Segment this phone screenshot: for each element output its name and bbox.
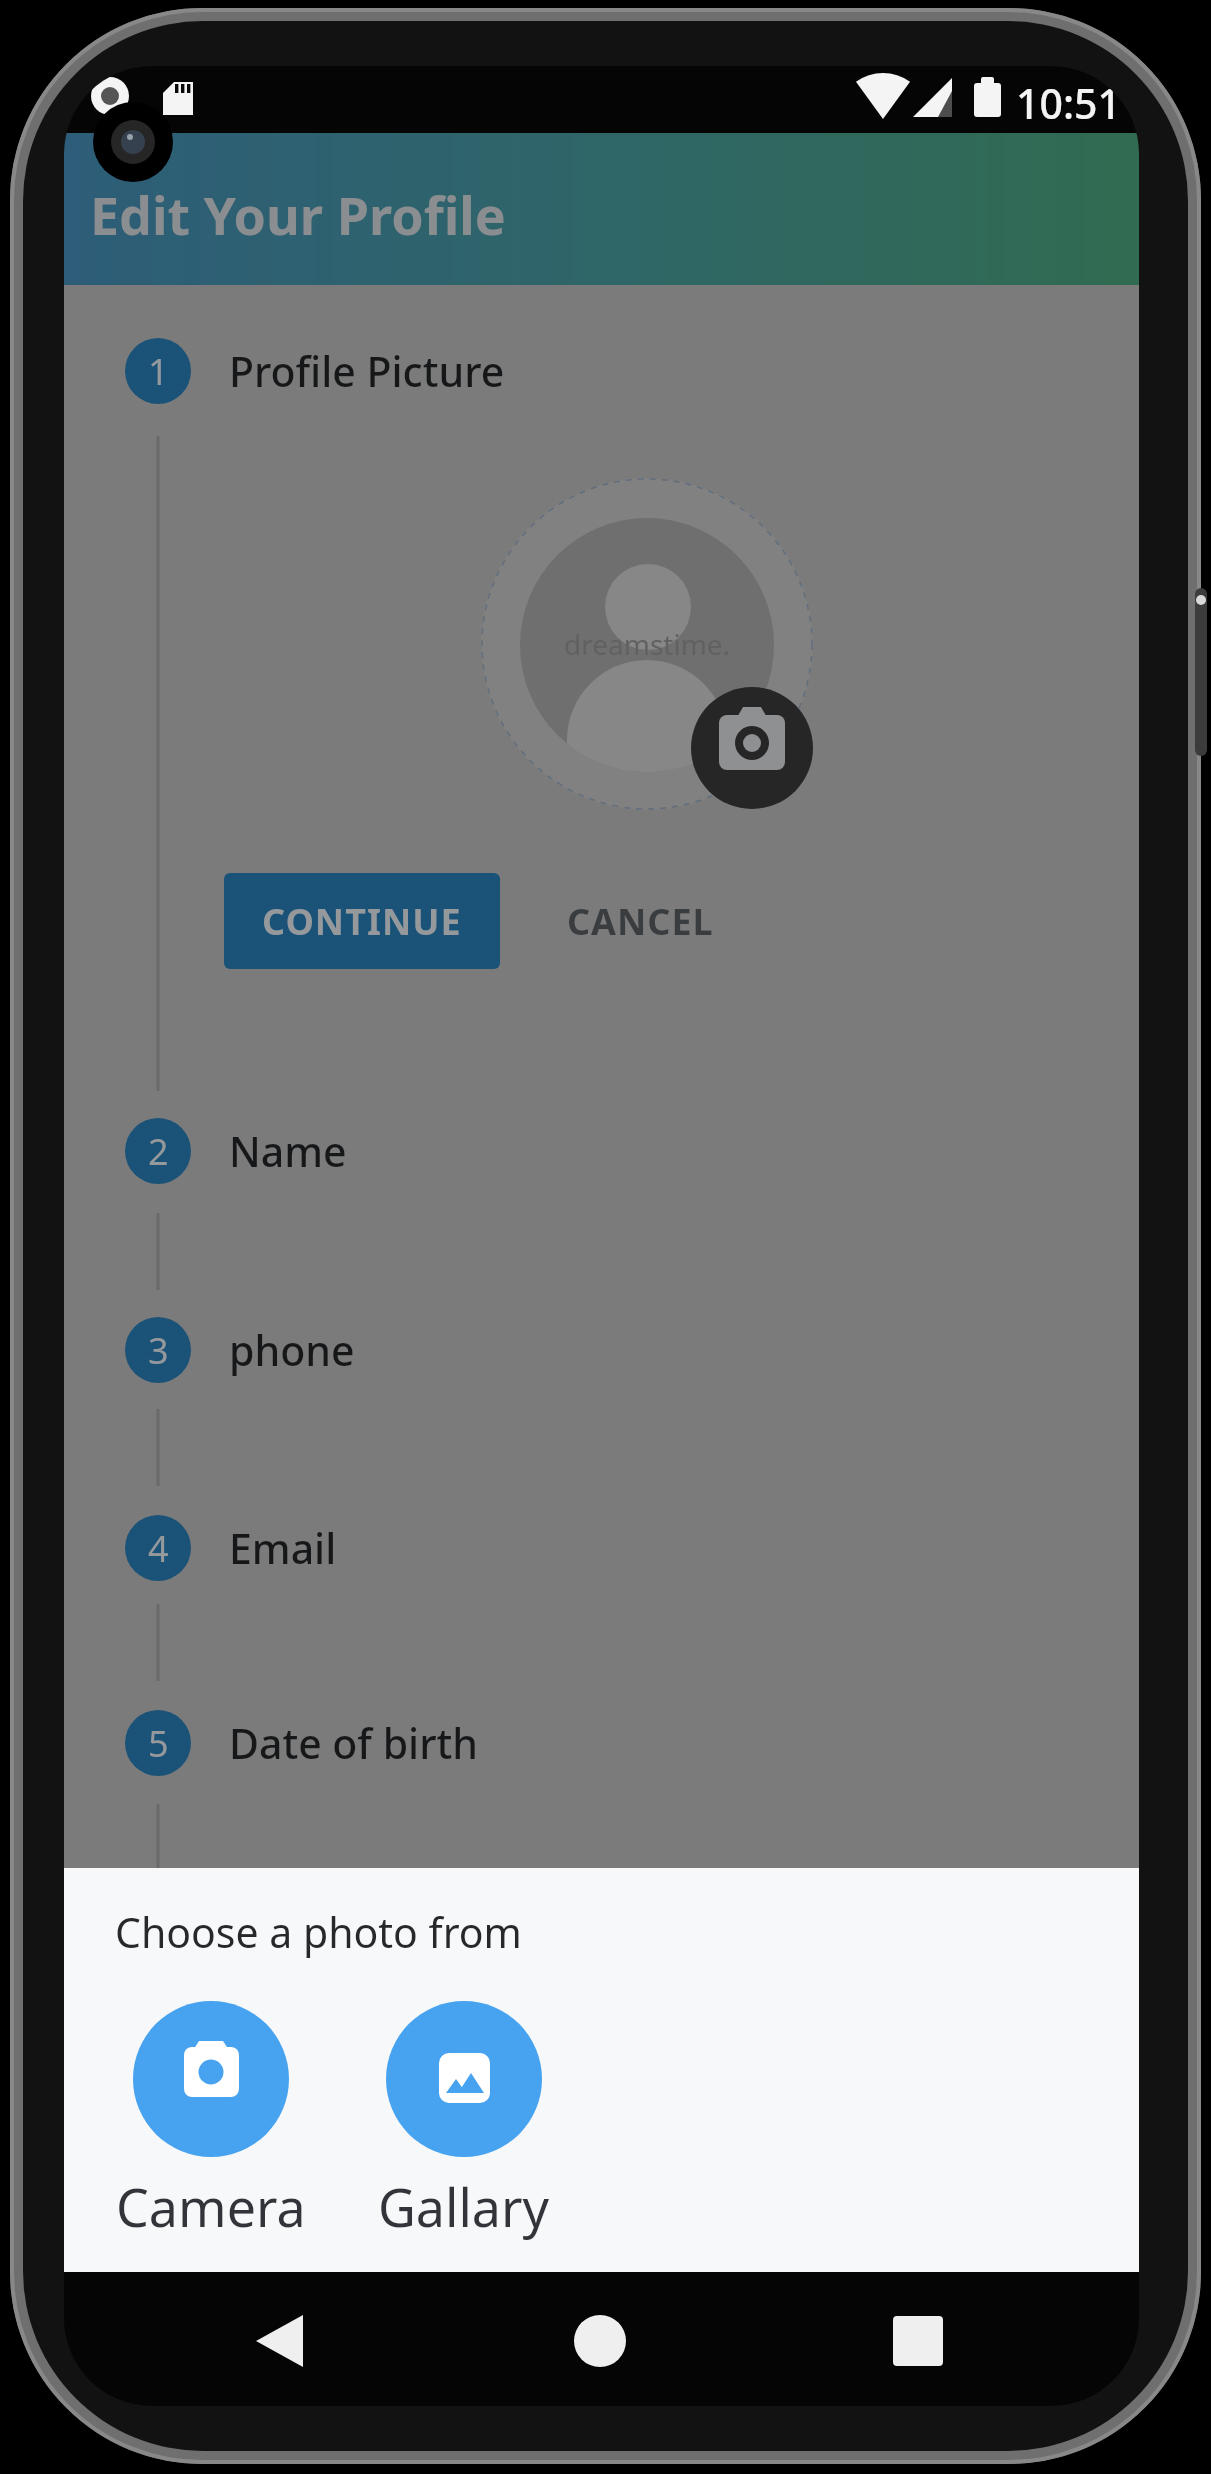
staticText: CANCEL (567, 897, 714, 946)
staticText: phone (229, 1322, 355, 1378)
button[interactable]: CONTINUE (224, 873, 500, 969)
staticText: 4 (148, 1524, 169, 1573)
button[interactable]: 3 (125, 1317, 355, 1383)
button[interactable] (691, 687, 813, 809)
button[interactable]: Gallary (366, 2001, 562, 2242)
staticText: Name (229, 1123, 347, 1179)
staticText: 10:51 (1016, 75, 1121, 131)
staticText: Email (229, 1520, 337, 1576)
button[interactable]: dreamstime. (481, 478, 813, 810)
staticText: 3 (148, 1326, 169, 1375)
staticText: dreamstime. (564, 625, 731, 663)
staticText: 5 (148, 1719, 169, 1768)
button[interactable] (224, 2296, 314, 2386)
button[interactable]: 2 (125, 1118, 347, 1184)
button[interactable]: 4 (125, 1515, 337, 1581)
staticText: Gallary (378, 2171, 550, 2242)
button[interactable]: CANCEL (540, 873, 740, 969)
staticText: CONTINUE (262, 897, 462, 946)
staticText: 1 (148, 347, 169, 396)
staticText: Date of birth (229, 1715, 478, 1771)
button[interactable] (555, 2296, 645, 2386)
staticText: Choose a photo from (115, 1904, 522, 1960)
staticText: Profile Picture (229, 343, 505, 399)
button[interactable] (873, 2296, 963, 2386)
staticText: Camera (116, 2171, 306, 2242)
button[interactable]: Camera (115, 2001, 307, 2242)
button[interactable]: 5 (125, 1710, 478, 1776)
button[interactable]: 1 (125, 338, 505, 404)
staticText: Edit Your Profile (90, 179, 506, 250)
staticText: 2 (148, 1127, 169, 1176)
